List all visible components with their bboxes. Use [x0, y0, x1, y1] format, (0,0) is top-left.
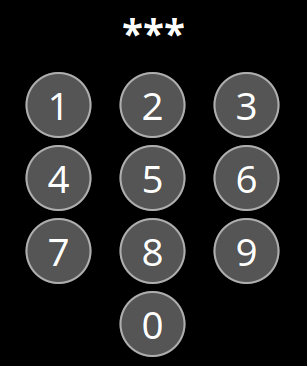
- staticText: ***: [122, 7, 185, 59]
- staticText: 8: [141, 225, 163, 277]
- button[interactable]: 8: [119, 218, 185, 284]
- button[interactable]: 6: [213, 145, 279, 211]
- staticText: 4: [47, 152, 69, 204]
- button[interactable]: 3: [213, 72, 279, 138]
- staticText: 3: [235, 79, 257, 131]
- button[interactable]: 4: [25, 145, 91, 211]
- staticText: 0: [141, 298, 163, 350]
- button[interactable]: 5: [119, 145, 185, 211]
- button[interactable]: 1: [25, 72, 91, 138]
- button[interactable]: 2: [119, 72, 185, 138]
- staticText: 1: [47, 79, 69, 131]
- staticText: 7: [47, 225, 69, 277]
- button[interactable]: 7: [25, 218, 91, 284]
- staticText: 9: [235, 225, 257, 277]
- staticText: 5: [141, 152, 163, 204]
- staticText: 6: [235, 152, 257, 204]
- staticText: 2: [141, 79, 163, 131]
- button[interactable]: 9: [213, 218, 279, 284]
- button[interactable]: 0: [119, 291, 185, 357]
